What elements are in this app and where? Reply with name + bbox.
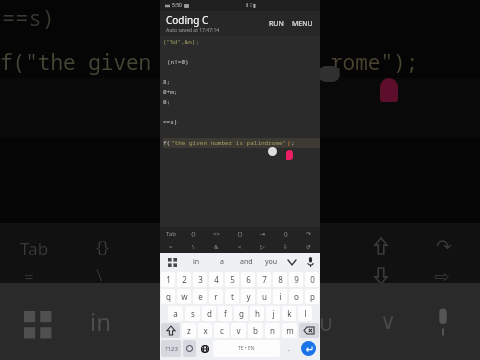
button[interactable]: ?123 [161, 340, 181, 357]
button[interactable]: b [248, 323, 263, 338]
button[interactable]: r [209, 289, 223, 304]
button[interactable]: d [202, 306, 216, 321]
button[interactable]: Shift [161, 323, 180, 338]
button[interactable]: x [198, 323, 212, 338]
staticText: \ [192, 243, 195, 251]
button[interactable]: in [184, 253, 209, 271]
staticText: 8 [278, 274, 283, 285]
button[interactable]: ↷ [297, 227, 320, 240]
staticText: = [24, 265, 34, 288]
button[interactable]: 2 [177, 272, 191, 287]
button[interactable]: i [273, 289, 287, 304]
button[interactable]: 9 [289, 272, 303, 287]
staticText: 3 [198, 274, 203, 285]
button[interactable]: < [228, 240, 251, 253]
button[interactable]: () [274, 227, 297, 240]
staticText: l [304, 308, 307, 319]
button[interactable]: z [182, 323, 196, 338]
staticText: a [220, 257, 224, 267]
button[interactable]: ↺ [297, 240, 320, 253]
staticText: w [181, 291, 188, 302]
staticText: b [253, 325, 258, 336]
button[interactable]: [] [228, 227, 251, 240]
button[interactable]: Backspace [299, 323, 319, 338]
button[interactable]: l [298, 306, 312, 321]
staticText: <> [213, 230, 220, 238]
button[interactable]: ▷ [251, 240, 274, 253]
staticText: 5 [230, 274, 235, 285]
button[interactable]: a [168, 306, 183, 321]
button[interactable]: Toolbox [160, 253, 184, 271]
button[interactable]: & [205, 240, 228, 253]
button[interactable]: Period [281, 339, 296, 358]
button[interactable]: t [225, 289, 239, 304]
button[interactable]: \ [182, 240, 205, 253]
button[interactable]: 0 [305, 272, 319, 287]
button[interactable]: a [209, 253, 234, 271]
button[interactable]: 5 [225, 272, 239, 287]
button[interactable]: 8 [273, 272, 287, 287]
button[interactable]: e [193, 289, 207, 304]
button[interactable]: ⇥ [251, 227, 274, 240]
button[interactable]: MENU [291, 18, 314, 30]
button[interactable]: and [234, 253, 259, 271]
button[interactable]: u [257, 289, 271, 304]
button[interactable]: q [161, 289, 175, 304]
button[interactable]: f [218, 306, 232, 321]
staticText: Coding C [166, 13, 209, 27]
staticText: e [198, 291, 203, 302]
button[interactable]: g [234, 306, 248, 321]
button[interactable]: Tab [160, 227, 182, 240]
button[interactable]: = [160, 240, 182, 253]
staticText: ?123 [165, 345, 178, 353]
staticText: 8; [163, 78, 171, 86]
staticText: s [191, 308, 195, 319]
button[interactable]: Enter [301, 341, 316, 356]
button[interactable]: m [282, 323, 297, 338]
staticText: 6 [246, 274, 251, 285]
staticText: "the given number is palindrome" [171, 139, 287, 147]
button[interactable]: y [241, 289, 255, 304]
button[interactable]: n [265, 323, 280, 338]
button[interactable]: you [259, 253, 284, 271]
staticText: Tab [20, 237, 49, 260]
button[interactable]: v [231, 323, 246, 338]
button[interactable]: c [214, 323, 229, 338]
staticText: ) [287, 139, 291, 147]
staticText: Auto saved at 17:47:14 [166, 27, 220, 34]
button[interactable]: Voice input [300, 253, 320, 271]
staticText: 9 [294, 274, 299, 285]
button[interactable]: Emoji [183, 340, 196, 357]
button[interactable]: {} [182, 227, 205, 240]
button[interactable]: o [289, 289, 303, 304]
button[interactable]: RUN [268, 18, 285, 30]
staticText: in [193, 257, 200, 267]
staticText: u [262, 291, 267, 302]
button[interactable]: <> [205, 227, 228, 240]
button[interactable]: More suggestions [284, 253, 300, 271]
button[interactable]: 6 [241, 272, 255, 287]
staticText: ↷ [436, 235, 452, 257]
button[interactable]: k [282, 306, 296, 321]
button[interactable]: j [266, 306, 280, 321]
button[interactable]: 7 [257, 272, 271, 287]
button[interactable]: Switch language [197, 339, 212, 358]
button[interactable]: Space [213, 340, 280, 357]
staticText: ▷ [260, 243, 265, 250]
button[interactable]: 1 [161, 272, 175, 287]
staticText: 4 [214, 274, 219, 285]
staticText: n [270, 325, 275, 336]
staticText: a [173, 308, 178, 319]
button[interactable]: h [250, 306, 264, 321]
staticText: k [287, 308, 292, 319]
button[interactable]: 4 [209, 272, 223, 287]
staticText: = [169, 243, 173, 251]
staticText: [] [238, 230, 242, 238]
button[interactable]: 3 [193, 272, 207, 287]
button[interactable]: s [185, 306, 200, 321]
staticText: x [203, 325, 208, 336]
staticText: o [294, 291, 299, 302]
button[interactable]: w [177, 289, 191, 304]
button[interactable]: ⇩ [274, 240, 297, 253]
button[interactable]: p [305, 289, 319, 304]
